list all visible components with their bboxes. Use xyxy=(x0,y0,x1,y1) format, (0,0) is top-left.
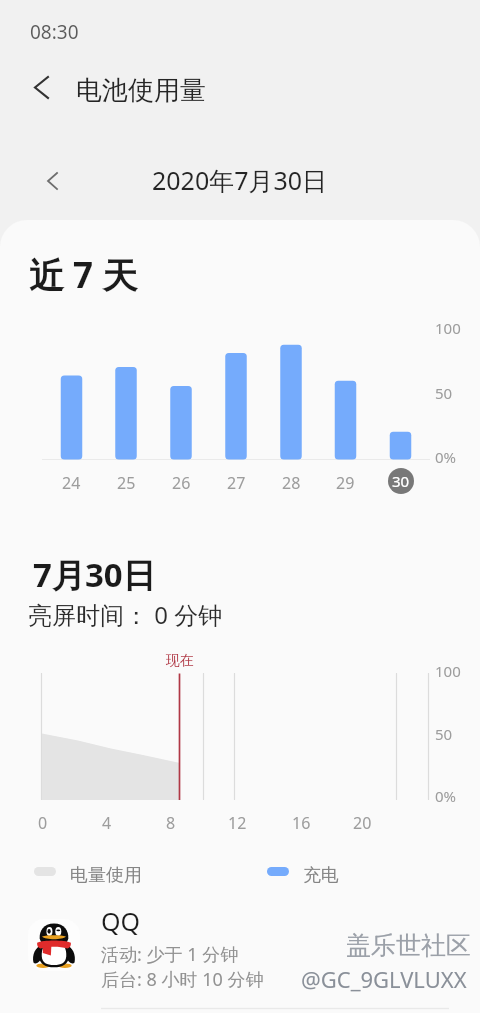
staticText: 后台: 8 小时 10 分钟 xyxy=(101,967,264,992)
staticText: 近 7 天 xyxy=(29,251,138,299)
staticText: 0% xyxy=(435,447,457,467)
button[interactable]: 30 xyxy=(388,468,414,494)
staticText: 电量使用 xyxy=(70,864,142,887)
staticText: 50 xyxy=(435,724,453,744)
staticText: 28 xyxy=(282,472,301,494)
staticText: 50 xyxy=(435,383,453,403)
staticText: 2020年7月30日 xyxy=(152,163,328,197)
staticText: 8 xyxy=(166,812,176,834)
staticText: 25 xyxy=(117,472,136,494)
staticText: 29 xyxy=(336,472,355,494)
staticText: 活动: 少于 1 分钟 xyxy=(101,942,239,967)
staticText: 亮屏时间： 0 分钟 xyxy=(28,598,223,631)
staticText: 100 xyxy=(435,661,461,681)
staticText: 0 xyxy=(38,812,48,834)
staticText: 08:30 xyxy=(30,19,79,45)
staticText: 充电 xyxy=(303,864,339,887)
staticText: 7月30日 xyxy=(33,552,156,597)
staticText: 27 xyxy=(227,472,246,494)
staticText: QQ xyxy=(101,904,141,938)
staticText: @GC_9GLVLUXX xyxy=(301,964,467,994)
staticText: 16 xyxy=(292,812,311,834)
button[interactable]: QQ xyxy=(0,901,480,1001)
button[interactable]: Back xyxy=(18,64,64,110)
staticText: 20 xyxy=(353,812,372,834)
staticText: 100 xyxy=(435,318,461,338)
staticText: 30 xyxy=(392,471,410,491)
staticText: 0% xyxy=(435,786,457,806)
staticText: 12 xyxy=(228,812,247,834)
staticText: 现在 xyxy=(166,652,194,670)
staticText: 26 xyxy=(172,472,191,494)
staticText: 24 xyxy=(62,472,81,494)
staticText: 4 xyxy=(102,812,112,834)
staticText: 电池使用量 xyxy=(76,74,206,107)
staticText: 盖乐世社区 xyxy=(346,930,471,961)
button[interactable]: Previous day xyxy=(30,159,74,203)
